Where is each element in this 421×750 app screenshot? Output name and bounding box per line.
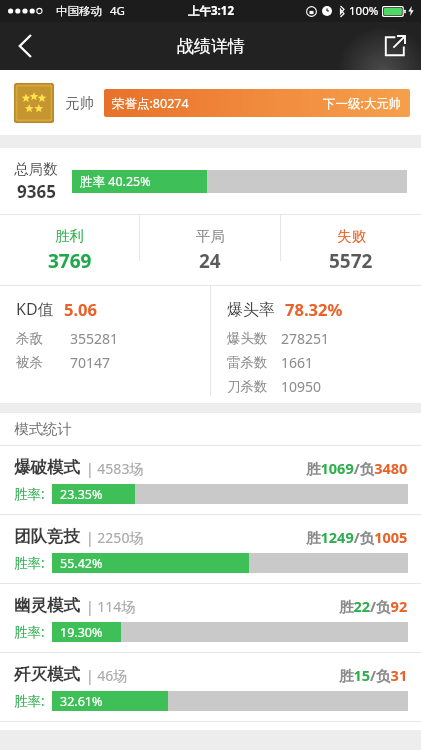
staticText: 上午3:12 <box>188 3 234 19</box>
staticText: 元帅 <box>65 94 94 112</box>
staticText: 爆破模式 <box>14 457 80 478</box>
staticText: 中国移动 <box>56 4 102 18</box>
staticText: | 2250场 <box>86 528 144 547</box>
staticText: 爆头率 <box>227 300 275 320</box>
button[interactable]: 爆破模式 <box>0 446 421 514</box>
staticText: 雷杀数 <box>227 354 268 371</box>
staticText: 10950 <box>281 377 322 396</box>
staticText: 胜15/负31 <box>339 665 408 685</box>
staticText: KD值 <box>16 298 54 320</box>
button[interactable]: Share <box>369 22 421 70</box>
button[interactable]: 幽灵模式 <box>0 584 421 652</box>
staticText: 胜率: <box>14 485 45 503</box>
staticText: 下一级:大元帅 <box>323 95 402 112</box>
staticText: 平局 <box>196 227 225 245</box>
staticText: 4G <box>110 3 125 19</box>
staticText: 被杀 <box>16 354 43 371</box>
staticText: 荣誉点:80274 <box>112 95 189 112</box>
button[interactable]: 平局 <box>140 215 280 285</box>
button[interactable]: Back <box>0 22 50 70</box>
staticText: | 4583场 <box>86 459 144 478</box>
staticText: 总局数 <box>14 160 58 178</box>
staticText: 70147 <box>70 353 111 372</box>
staticText: 模式统计 <box>14 420 72 438</box>
button[interactable]: 团队竞技 <box>0 515 421 583</box>
staticText: 9365 <box>17 180 56 203</box>
staticText: | 114场 <box>86 597 136 616</box>
staticText: 胜1069/负3480 <box>306 458 408 478</box>
staticText: | 46场 <box>86 666 128 685</box>
button[interactable]: 歼灭模式 <box>0 653 421 721</box>
staticText: 歼灭模式 <box>14 664 80 685</box>
staticText: 胜利 <box>55 227 84 245</box>
staticText: 胜1249/负1005 <box>306 527 408 547</box>
staticText: 杀敌 <box>16 330 43 347</box>
staticText: 战绩详情 <box>177 36 245 57</box>
staticText: 3769 <box>48 248 92 274</box>
staticText: 胜率 40.25% <box>80 173 151 190</box>
staticText: 5572 <box>329 248 373 274</box>
staticText: 355281 <box>70 329 119 348</box>
staticText: 胜率: <box>14 554 45 572</box>
staticText: 78.32% <box>285 298 343 320</box>
staticText: 32.61% <box>60 693 103 710</box>
button[interactable]: 荣誉点:80274 <box>104 89 410 117</box>
staticText: 失败 <box>337 227 366 245</box>
staticText: 爆头数 <box>227 330 268 347</box>
staticText: 刀杀数 <box>227 378 268 395</box>
button[interactable]: 失败 <box>281 215 421 285</box>
staticText: 5.06 <box>64 298 97 320</box>
staticText: 55.42% <box>60 555 103 572</box>
staticText: 团队竞技 <box>14 526 80 547</box>
staticText: 24 <box>199 248 221 274</box>
staticText: 100% <box>349 3 379 19</box>
staticText: 胜率: <box>14 692 45 710</box>
staticText: 19.30% <box>60 624 103 641</box>
staticText: 幽灵模式 <box>14 595 80 616</box>
staticText: 胜22/负92 <box>339 596 408 616</box>
button[interactable]: 胜利 <box>0 215 139 285</box>
staticText: 胜率: <box>14 623 45 641</box>
staticText: 1661 <box>281 353 314 372</box>
staticText: 278251 <box>281 329 330 348</box>
staticText: 23.35% <box>60 486 103 503</box>
